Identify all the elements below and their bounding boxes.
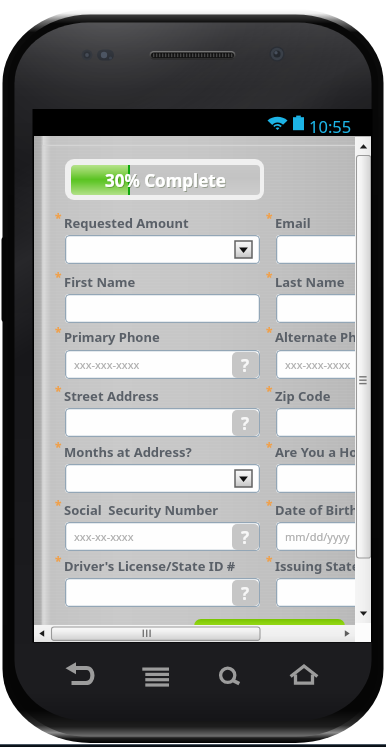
button[interactable]: xxx-xxx-xxxx	[276, 350, 371, 379]
staticText: *	[266, 324, 273, 340]
staticText: *	[55, 269, 62, 285]
button[interactable]: Open dropdown	[65, 235, 260, 264]
button[interactable]: xxx-xxx-xxxx	[65, 350, 260, 379]
other: Battery	[293, 115, 304, 131]
staticText: *	[55, 210, 62, 226]
button[interactable]	[276, 294, 371, 323]
staticText: ?	[241, 354, 250, 377]
staticText: First Name	[64, 273, 136, 291]
staticText: Issuing State	[275, 557, 360, 575]
button[interactable]: Help	[232, 580, 259, 606]
button[interactable]	[276, 408, 371, 437]
staticText: mm/dd/yyyy	[285, 529, 350, 544]
staticText: ?	[241, 526, 250, 549]
staticText: xxx-xx-xxxx	[74, 529, 134, 544]
staticText: Alternate Phone	[275, 328, 371, 346]
staticText: *	[55, 439, 62, 455]
staticText: ?	[241, 412, 250, 435]
staticText: *	[266, 269, 273, 285]
staticText: Date of Birth	[275, 501, 359, 519]
button[interactable]: Home	[284, 656, 324, 696]
button[interactable]: Submit	[194, 619, 345, 639]
staticText: xxx-xxx-xxxx	[285, 357, 351, 372]
button[interactable]	[276, 235, 371, 264]
button[interactable]: xxx-xx-xxxx	[65, 522, 260, 551]
staticText: Primary Phone	[64, 328, 160, 346]
button[interactable]: Help	[65, 408, 260, 437]
staticText: Months at Address?	[64, 443, 192, 461]
button[interactable]	[276, 464, 371, 493]
staticText: 30% Complete	[105, 169, 226, 192]
button[interactable]: Back	[62, 656, 104, 696]
staticText: Street Address	[64, 387, 159, 405]
staticText: Social Security Number	[64, 501, 219, 519]
staticText: *	[55, 383, 62, 399]
staticText: Zip Code	[275, 387, 331, 405]
staticText: xxx-xxx-xxxx	[74, 357, 140, 372]
button[interactable]: Help	[232, 352, 259, 378]
staticText: *	[55, 553, 62, 569]
staticText: *	[266, 497, 273, 513]
button[interactable]: Open dropdown	[235, 241, 252, 258]
staticText: *	[55, 324, 62, 340]
staticText: 30% Complete	[106, 170, 227, 193]
button[interactable]: Open dropdown	[65, 464, 260, 493]
button[interactable]: Help	[232, 410, 259, 436]
staticText: Are You a Homeowner?	[275, 443, 371, 461]
other: Wi-Fi	[267, 116, 288, 131]
button[interactable]: Help	[232, 524, 259, 550]
staticText: *	[266, 210, 273, 226]
button[interactable]: Vertical scroll bar	[355, 137, 371, 623]
staticText: Last Name	[275, 273, 345, 291]
staticText: 10:55	[309, 115, 352, 137]
button[interactable]: Search	[208, 656, 248, 696]
staticText: Email	[275, 214, 311, 232]
staticText: Driver's License/State ID #	[64, 557, 236, 575]
button[interactable]: Horizontal scroll bar	[34, 625, 355, 642]
staticText: Requested Amount	[64, 214, 189, 232]
button[interactable]: 30% Complete	[65, 159, 264, 200]
button[interactable]	[276, 578, 371, 607]
button[interactable]: Open dropdown	[235, 470, 252, 487]
staticText: *	[266, 383, 273, 399]
button[interactable]: mm/dd/yyyy	[276, 522, 371, 551]
staticText: *	[266, 553, 273, 569]
staticText: ?	[241, 582, 250, 605]
button[interactable]: Help	[65, 578, 260, 607]
staticText: *	[55, 497, 62, 513]
button[interactable]	[65, 294, 260, 323]
staticText: *	[266, 439, 273, 455]
button[interactable]: Menu	[136, 656, 176, 696]
